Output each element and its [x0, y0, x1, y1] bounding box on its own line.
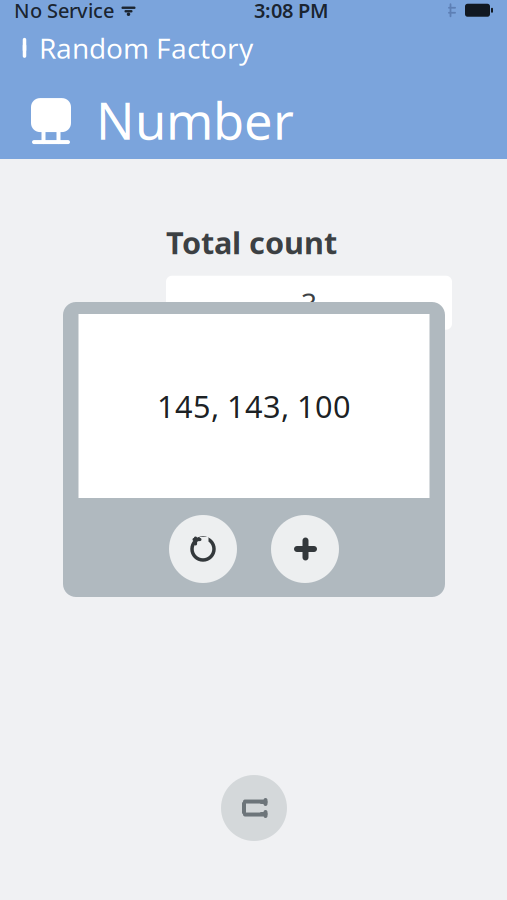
- button[interactable]: Regenerate: [169, 515, 237, 583]
- staticText: Total count: [166, 222, 337, 263]
- staticText: 3:08 PM: [254, 0, 329, 24]
- staticText: Random Factory: [39, 29, 253, 66]
- button[interactable]: Close: [271, 515, 339, 583]
- staticText: No Service: [14, 0, 114, 24]
- button[interactable]: Random Factory: [0, 23, 253, 72]
- staticText: Number: [96, 86, 294, 154]
- button[interactable]: Shuffle: [221, 775, 287, 841]
- staticText: 3: [301, 284, 317, 321]
- staticText: 145, 143, 100: [157, 386, 351, 426]
